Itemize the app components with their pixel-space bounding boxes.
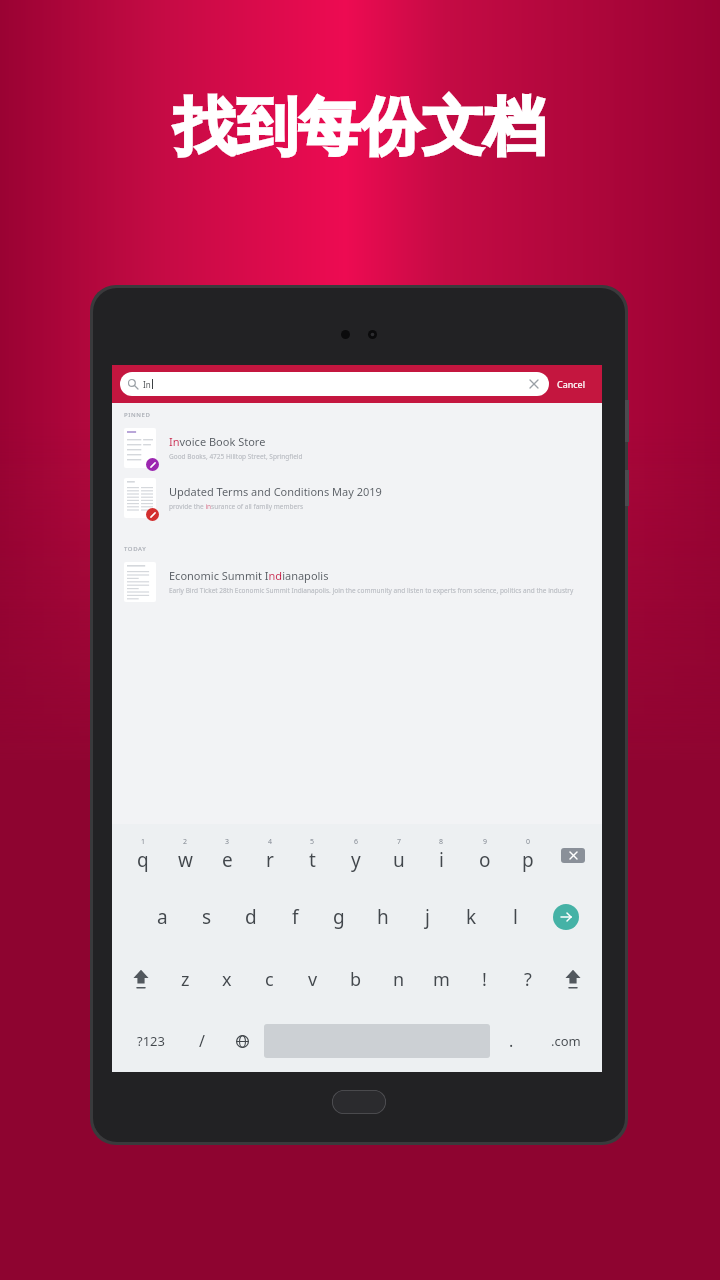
button[interactable]: l	[493, 886, 537, 948]
staticText: Good Books, 4725 Hilltop Street, Springf…	[169, 452, 303, 461]
button[interactable]: 6	[334, 824, 377, 886]
button[interactable]: .	[490, 1010, 533, 1072]
staticText: 6	[354, 837, 359, 847]
button[interactable]: Enter	[537, 886, 594, 948]
staticText: t	[309, 847, 316, 873]
button[interactable]: Backspace	[549, 824, 596, 886]
staticText: Invoice Book Store	[169, 434, 266, 449]
button[interactable]: Shift	[118, 948, 164, 1010]
staticText: z	[181, 967, 190, 992]
button[interactable]: a	[140, 886, 185, 948]
staticText: m	[433, 967, 450, 992]
button[interactable]: Clear	[527, 377, 541, 391]
staticText: q	[137, 847, 149, 873]
staticText: e	[222, 847, 233, 873]
button[interactable]: Cancel	[549, 374, 594, 394]
staticText: .	[509, 1030, 514, 1052]
button[interactable]: .com	[533, 1010, 598, 1072]
staticText: 9	[483, 837, 488, 847]
button[interactable]: k	[449, 886, 493, 948]
button[interactable]: b	[334, 948, 377, 1010]
staticText: /	[199, 1030, 205, 1052]
button[interactable]: 5	[291, 824, 334, 886]
button[interactable]: Shift	[549, 948, 596, 1010]
button[interactable]: Updated Terms and Conditions May 2019	[112, 473, 602, 523]
staticText: 8	[439, 837, 444, 847]
button[interactable]: j	[405, 886, 449, 948]
button[interactable]: g	[317, 886, 361, 948]
button[interactable]: x	[206, 948, 248, 1010]
button[interactable]: f	[273, 886, 317, 948]
button[interactable]: z	[164, 948, 206, 1010]
staticText: Cancel	[557, 378, 586, 390]
staticText: .com	[551, 1032, 581, 1050]
staticText: 4	[268, 837, 273, 847]
button[interactable]: Invoice Book Store	[112, 423, 602, 473]
staticText: u	[393, 847, 405, 873]
staticText: 3	[225, 837, 230, 847]
staticText: w	[178, 847, 193, 873]
staticText: i	[439, 847, 444, 873]
button[interactable]: 0	[506, 824, 549, 886]
button[interactable]: h	[361, 886, 405, 948]
staticText: PINNED	[124, 411, 151, 419]
button[interactable]: 9	[463, 824, 506, 886]
staticText: k	[466, 904, 477, 930]
staticText: o	[479, 847, 491, 873]
staticText: Economic Summit Indianapolis	[169, 568, 329, 583]
button[interactable]: /	[182, 1010, 221, 1072]
staticText: g	[333, 904, 345, 930]
button[interactable]: n	[377, 948, 420, 1010]
staticText: d	[245, 904, 257, 930]
staticText: l	[513, 904, 518, 930]
button[interactable]: 1	[122, 824, 164, 886]
button[interactable]: !	[463, 948, 506, 1010]
button[interactable]: ?	[506, 948, 549, 1010]
staticText: ?123	[137, 1032, 165, 1050]
staticText: v	[308, 967, 318, 992]
staticText: Early Bird Ticket 28th Economic Summit I…	[169, 586, 574, 595]
staticText: c	[265, 967, 274, 992]
staticText: 2	[183, 837, 188, 847]
button[interactable]: 2	[164, 824, 206, 886]
button[interactable]: v	[291, 948, 334, 1010]
staticText: 1	[141, 837, 146, 847]
button[interactable]: d	[229, 886, 273, 948]
button[interactable]: 7	[377, 824, 420, 886]
button[interactable]: 3	[206, 824, 248, 886]
staticText: Updated Terms and Conditions May 2019	[169, 484, 382, 499]
button[interactable]: s	[185, 886, 229, 948]
staticText: s	[202, 904, 212, 930]
staticText: x	[222, 967, 232, 992]
button[interactable]: 4	[248, 824, 291, 886]
staticText: !	[482, 967, 487, 992]
button[interactable]: Economic Summit Indianapolis	[112, 557, 602, 607]
button[interactable]: Change language	[221, 1010, 264, 1072]
button[interactable]: m	[420, 948, 463, 1010]
staticText: 5	[310, 837, 315, 847]
button[interactable]: 8	[420, 824, 463, 886]
staticText: 找到每份文档	[174, 88, 546, 166]
staticText: j	[425, 904, 430, 930]
staticText: a	[157, 904, 168, 930]
button[interactable]: ?123	[120, 1010, 182, 1072]
staticText: f	[292, 904, 299, 930]
staticText: p	[522, 847, 534, 873]
staticText: h	[377, 904, 389, 930]
staticText: ?	[524, 967, 532, 992]
staticText: y	[351, 847, 361, 873]
staticText: 0	[526, 837, 531, 847]
button[interactable]: c	[248, 948, 291, 1010]
staticText: 7	[397, 837, 402, 847]
staticText: provide the insurance of all family memb…	[169, 502, 304, 511]
staticText: In	[143, 379, 151, 390]
staticText: r	[266, 847, 274, 873]
button[interactable]: In	[120, 372, 549, 396]
staticText: TODAY	[124, 545, 147, 553]
button[interactable]: Home	[332, 1090, 386, 1114]
staticText: b	[350, 967, 362, 992]
staticText: n	[393, 967, 405, 992]
